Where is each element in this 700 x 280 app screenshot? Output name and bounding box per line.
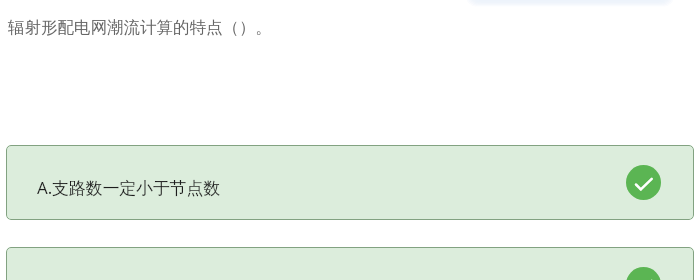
- button[interactable]: B.各节点电压相差较大: [6, 247, 694, 280]
- button[interactable]: Correct answer: [626, 165, 661, 200]
- staticText: 辐射形配电网潮流计算的特点（）。: [8, 17, 272, 38]
- button[interactable]: A.支路数一定小于节点数: [6, 145, 694, 220]
- staticText: A.支路数一定小于节点数: [37, 176, 221, 199]
- button[interactable]: Correct answer: [626, 267, 661, 280]
